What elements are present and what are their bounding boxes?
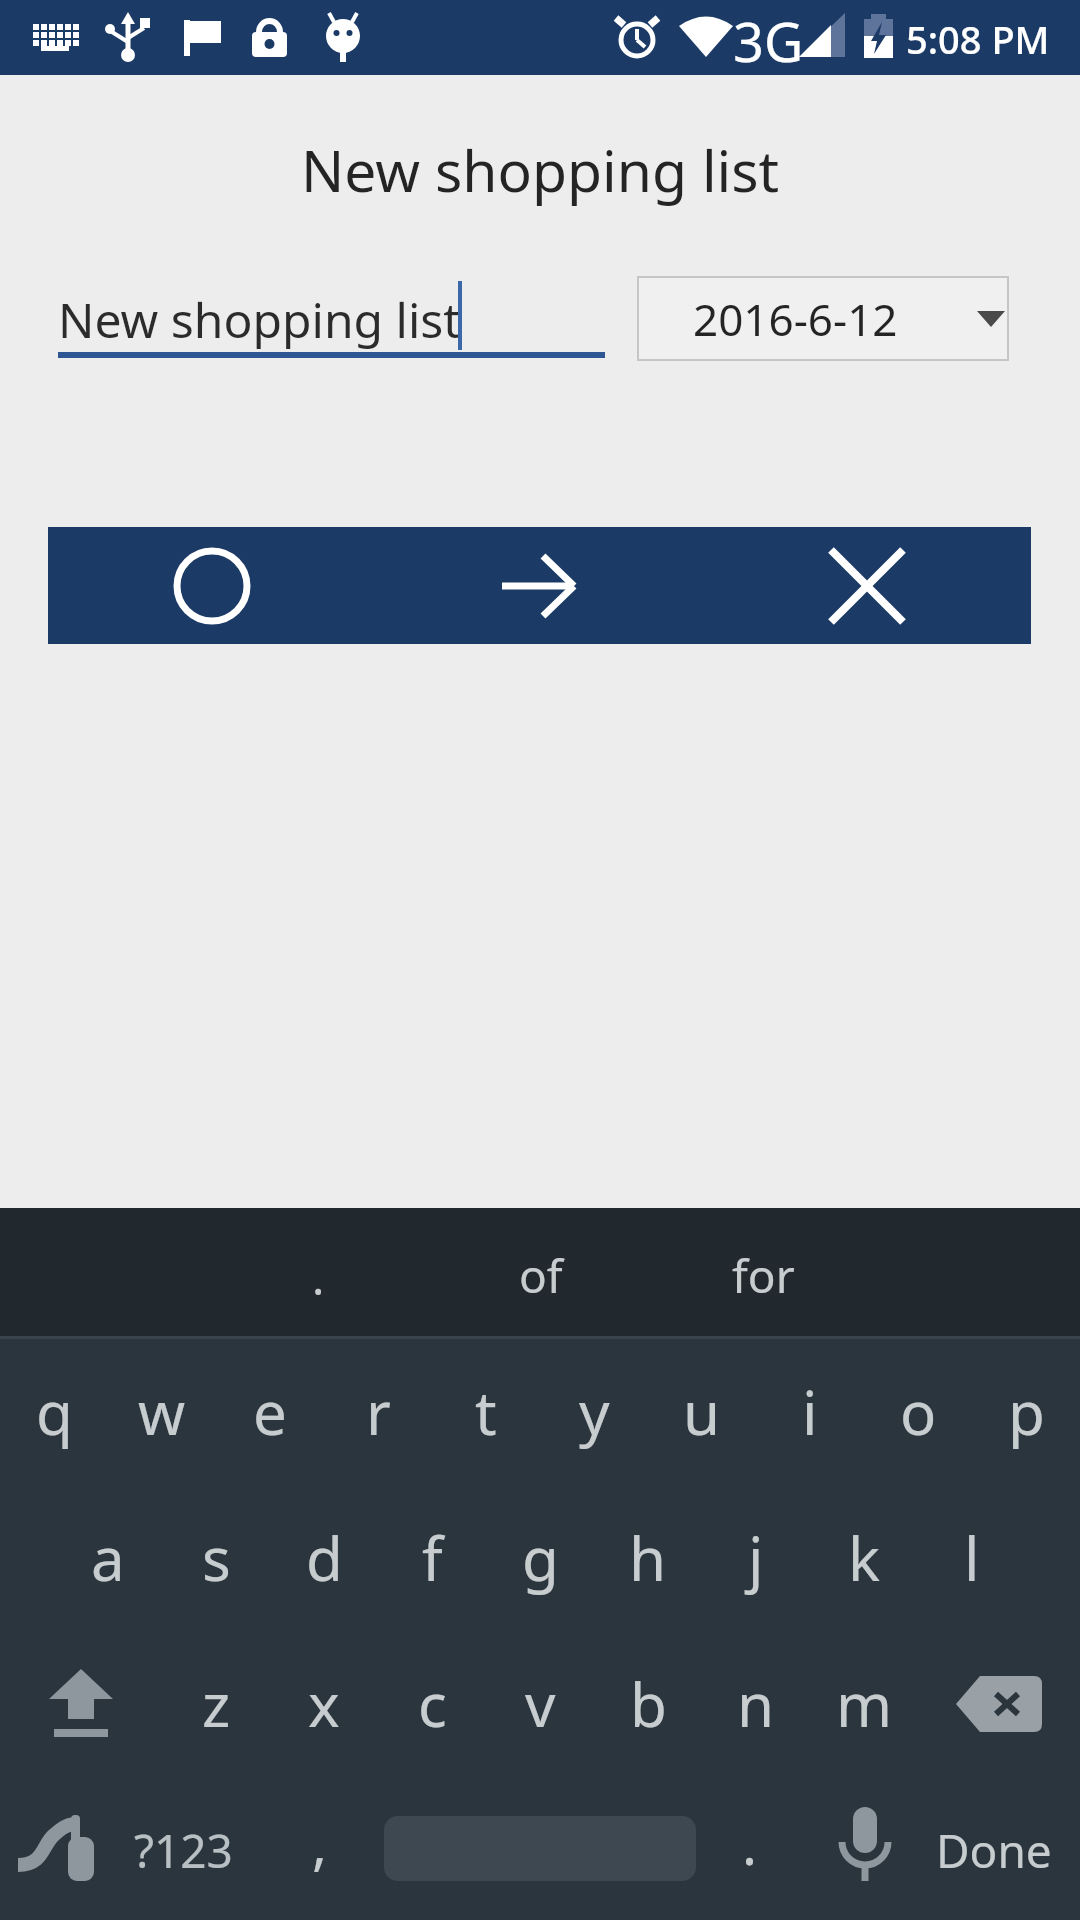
button[interactable]: ?123 [134, 1819, 233, 1882]
button[interactable]: z [162, 1631, 270, 1777]
staticText: d [306, 1517, 343, 1599]
staticText: r [366, 1371, 391, 1453]
button[interactable]: . [312, 1246, 325, 1309]
button[interactable]: h [594, 1485, 702, 1631]
button[interactable]: l [918, 1485, 1026, 1631]
staticText: v [525, 1663, 556, 1745]
button[interactable]: a [54, 1485, 162, 1631]
staticText: t [475, 1371, 497, 1453]
button[interactable]: b [594, 1631, 702, 1777]
button[interactable]: t [432, 1339, 540, 1485]
staticText: a [91, 1517, 125, 1599]
button[interactable]: q [0, 1339, 108, 1485]
staticText: w [138, 1371, 186, 1453]
staticText: 2016-6-12 [693, 289, 898, 349]
staticText: x [308, 1663, 340, 1745]
button[interactable] [48, 527, 375, 644]
button[interactable]: n [702, 1631, 810, 1777]
button[interactable] [375, 527, 703, 644]
button[interactable]: s [162, 1485, 270, 1631]
button[interactable]: 2016-6-12 [637, 276, 1009, 361]
staticText: o [900, 1371, 937, 1453]
button[interactable]: j [702, 1485, 810, 1631]
button[interactable] [703, 527, 1031, 644]
staticText: f [422, 1517, 443, 1599]
staticText: k [848, 1517, 881, 1599]
staticText: e [253, 1371, 287, 1453]
staticText: y [579, 1371, 610, 1453]
button[interactable]: . [742, 1805, 758, 1881]
button[interactable]: i [756, 1339, 864, 1485]
staticText: j [748, 1517, 764, 1599]
button[interactable]: Done [936, 1819, 1052, 1882]
staticText: n [737, 1663, 775, 1745]
button[interactable]: , [312, 1805, 328, 1881]
button[interactable]: f [378, 1485, 486, 1631]
staticText: s [202, 1517, 231, 1599]
button[interactable]: x [270, 1631, 378, 1777]
button[interactable]: o [864, 1339, 972, 1485]
button[interactable] [16, 1813, 96, 1883]
staticText: New shopping list [58, 287, 461, 352]
staticText: New shopping list [301, 131, 780, 209]
staticText: g [522, 1517, 559, 1599]
button[interactable]: u [648, 1339, 756, 1485]
staticText: h [629, 1517, 667, 1599]
button[interactable]: p [972, 1339, 1080, 1485]
button[interactable] [918, 1631, 1080, 1777]
staticText: q [36, 1371, 73, 1453]
button[interactable]: g [486, 1485, 594, 1631]
staticText: l [964, 1517, 980, 1599]
button[interactable]: d [270, 1485, 378, 1631]
staticText: c [418, 1663, 447, 1745]
button[interactable] [830, 1805, 900, 1900]
button[interactable]: for [732, 1244, 795, 1307]
button[interactable]: of [519, 1244, 563, 1307]
button[interactable] [0, 1631, 162, 1777]
button[interactable]: k [810, 1485, 918, 1631]
button[interactable]: v [486, 1631, 594, 1777]
staticText: 3G [733, 4, 804, 78]
button[interactable]: y [540, 1339, 648, 1485]
button[interactable]: e [216, 1339, 324, 1485]
button[interactable]: w [108, 1339, 216, 1485]
staticText: u [683, 1371, 721, 1453]
staticText: m [836, 1663, 893, 1745]
button[interactable]: m [810, 1631, 918, 1777]
button[interactable]: r [324, 1339, 432, 1485]
staticText: i [802, 1371, 818, 1453]
staticText: b [630, 1663, 667, 1745]
staticText: p [1008, 1371, 1045, 1453]
staticText: 5:08 PM [906, 13, 1050, 65]
button[interactable]: c [378, 1631, 486, 1777]
staticText: z [202, 1663, 231, 1745]
